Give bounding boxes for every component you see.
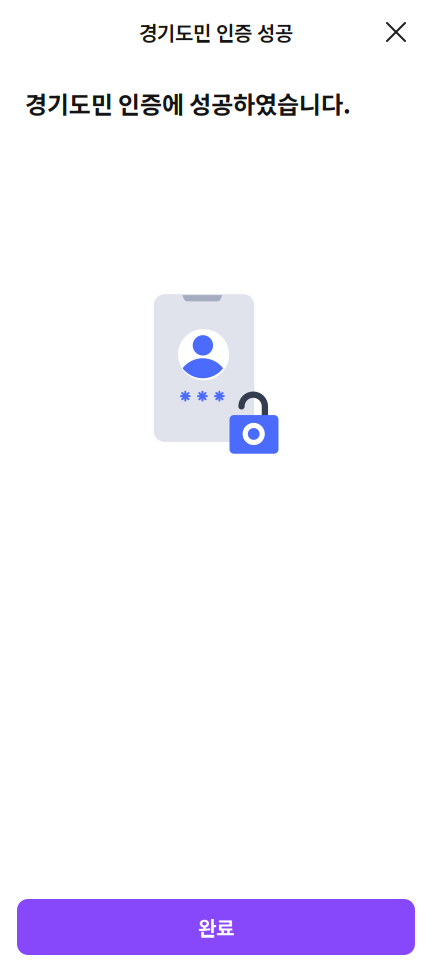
staticText: 완료 [198,912,234,941]
staticText: 경기도민 인증에 성공하였습니다. [25,86,351,121]
staticText: 경기도민 인증 성공 [139,17,293,46]
button[interactable]: 닫기 [373,9,419,55]
button[interactable]: 완료 [17,899,415,955]
